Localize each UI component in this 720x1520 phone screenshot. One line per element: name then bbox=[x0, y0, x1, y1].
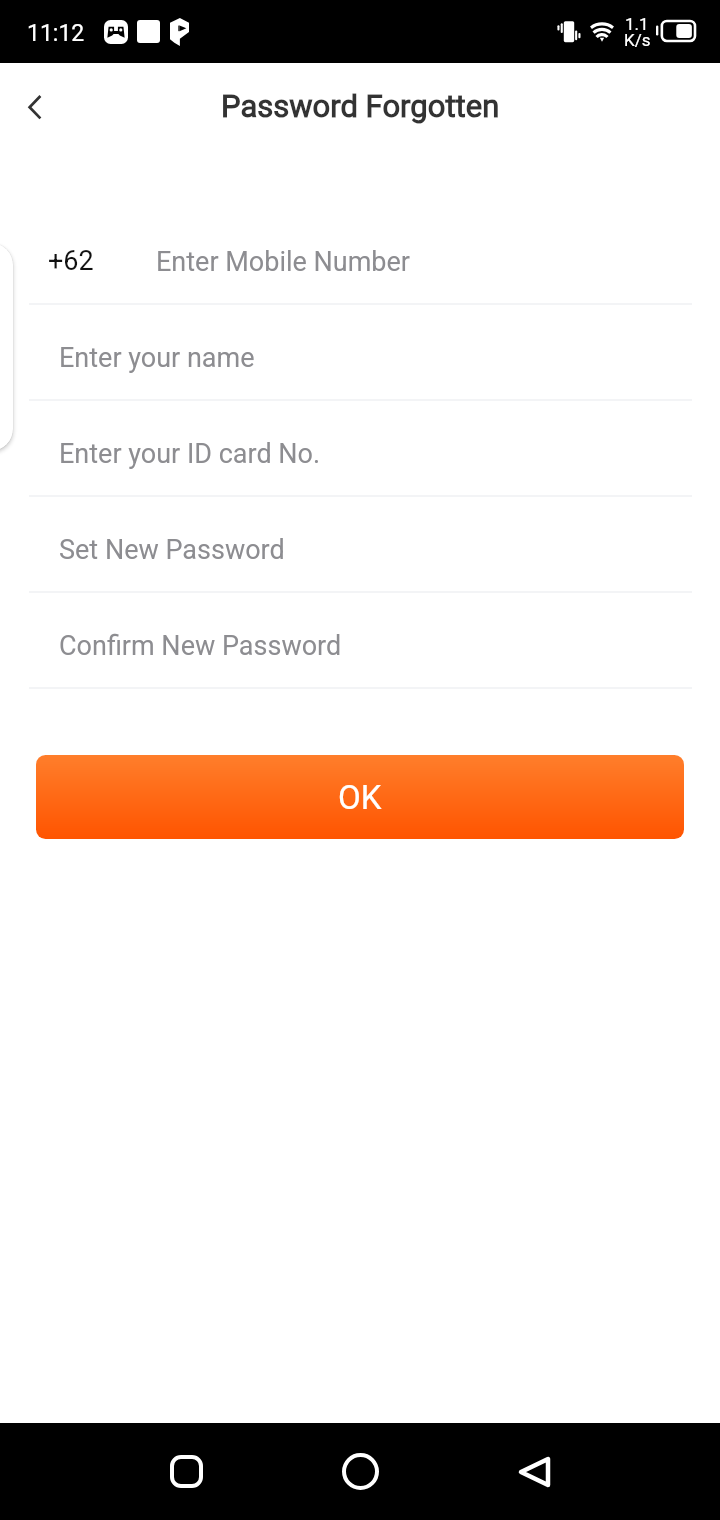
staticText: OK bbox=[338, 778, 382, 817]
button[interactable]: Enter your ID card No. bbox=[0, 401, 720, 497]
staticText: 1.1 bbox=[625, 14, 649, 34]
button[interactable]: +62 bbox=[0, 209, 720, 305]
button[interactable]: OK bbox=[36, 755, 684, 839]
staticText: K/s bbox=[624, 30, 651, 50]
button[interactable]: Recent apps bbox=[150, 1435, 223, 1508]
staticText: Enter Mobile Number bbox=[156, 246, 410, 278]
staticText: Password Forgotten bbox=[221, 88, 500, 124]
staticText: Confirm New Password bbox=[59, 630, 342, 662]
button[interactable]: Confirm New Password bbox=[0, 593, 720, 689]
staticText: 11:12 bbox=[27, 20, 85, 47]
button[interactable]: Country code list bbox=[0, 243, 13, 451]
button[interactable]: Set New Password bbox=[0, 497, 720, 593]
button[interactable]: Back bbox=[6, 78, 62, 134]
button[interactable]: Back bbox=[497, 1435, 570, 1508]
staticText: Set New Password bbox=[59, 534, 285, 566]
button[interactable]: Home bbox=[324, 1435, 397, 1508]
staticText: Enter your ID card No. bbox=[59, 438, 321, 470]
staticText: +62 bbox=[48, 245, 94, 277]
staticText: Enter your name bbox=[59, 342, 255, 374]
button[interactable]: Enter your name bbox=[0, 305, 720, 401]
